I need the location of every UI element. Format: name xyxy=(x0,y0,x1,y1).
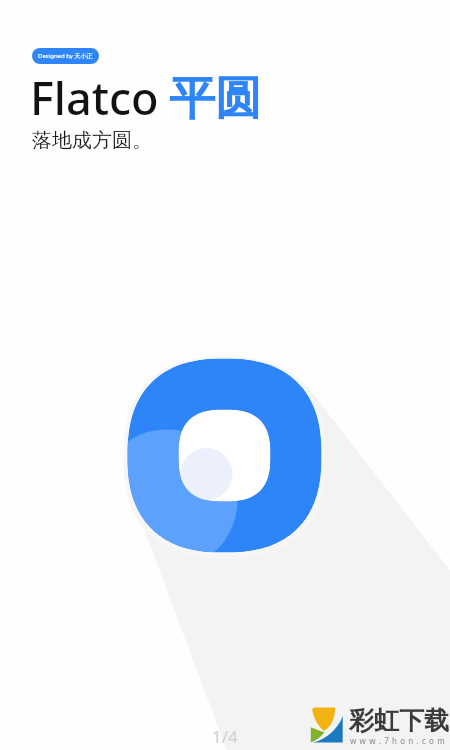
staticText: Flatco xyxy=(30,67,159,128)
staticText: 1/4 xyxy=(212,725,238,748)
staticText: 落地成方圆。 xyxy=(32,128,152,153)
staticText: w w w . 7 h o n . c o m xyxy=(350,735,446,746)
button[interactable]: Designed by 天小正 xyxy=(32,48,99,64)
staticText: 平圆 xyxy=(169,70,261,128)
staticText: 彩虹下载 xyxy=(349,705,449,736)
staticText: Designed by 天小正 xyxy=(38,52,93,60)
